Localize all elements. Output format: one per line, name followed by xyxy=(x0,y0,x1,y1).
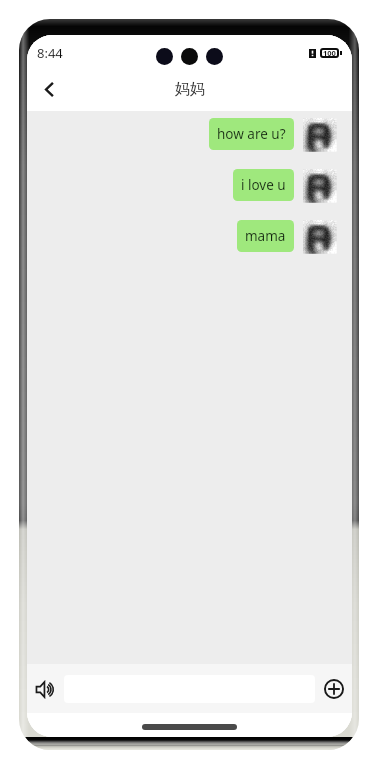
staticText: how are u? xyxy=(217,125,286,143)
staticText: 100 xyxy=(323,48,336,58)
button[interactable]: Contact avatar xyxy=(303,169,336,202)
button[interactable]: i love u xyxy=(233,169,294,201)
button[interactable]: Voice input xyxy=(27,671,63,707)
staticText: i love u xyxy=(241,176,286,194)
staticText: mama xyxy=(245,227,286,245)
button[interactable]: Back xyxy=(31,71,67,107)
button[interactable]: Contact avatar xyxy=(303,118,336,151)
button[interactable]: how are u? xyxy=(209,118,294,150)
staticText: 8:44 xyxy=(37,44,63,62)
button[interactable]: More options xyxy=(316,671,352,707)
button[interactable]: mama xyxy=(237,220,294,252)
staticText: 妈妈 xyxy=(175,80,205,99)
button[interactable]: Contact avatar xyxy=(303,220,336,253)
